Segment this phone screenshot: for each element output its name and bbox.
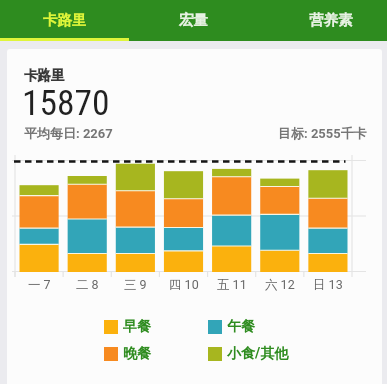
staticText: 早餐 [123,318,151,336]
staticText: 二 8 [76,277,99,293]
staticText: 五 11 [217,277,247,293]
button[interactable]: 宏量 [129,0,258,41]
staticText: 卡路里 [24,67,65,84]
staticText: 小食/其他 [227,345,289,363]
button[interactable]: 营养素 [258,0,387,41]
staticText: 营养素 [309,11,353,29]
button[interactable]: 卡路里 [0,0,129,41]
staticText: 三 9 [124,277,147,293]
staticText: 目标: 2555千卡 [278,125,367,141]
staticText: 日 13 [313,277,343,293]
staticText: 15870 [22,82,110,124]
staticText: 午餐 [227,318,255,336]
staticText: 卡路里 [43,11,87,29]
staticText: 一 7 [28,277,51,293]
staticText: 宏量 [179,11,208,29]
staticText: 平均每日: 2267 [24,125,113,141]
staticText: 四 10 [169,277,199,293]
staticText: 六 12 [265,277,295,293]
staticText: 晚餐 [123,345,151,363]
